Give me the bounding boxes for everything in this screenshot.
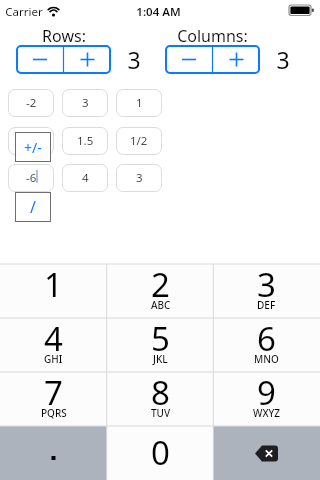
button[interactable]: 4 bbox=[62, 164, 108, 192]
button[interactable] bbox=[16, 45, 64, 74]
staticText: 1.5 bbox=[77, 133, 94, 149]
staticText: PQRS bbox=[41, 406, 67, 420]
button[interactable]: 7 bbox=[0, 372, 107, 426]
staticText: 8 bbox=[151, 370, 170, 415]
button[interactable]: 3 bbox=[213, 264, 320, 318]
button[interactable]: 3 bbox=[62, 89, 108, 117]
button[interactable]: 4 bbox=[0, 318, 107, 372]
staticText: / bbox=[30, 196, 36, 218]
staticText: DEF bbox=[257, 298, 276, 312]
staticText: 3 bbox=[276, 44, 290, 70]
staticText: 6 bbox=[257, 316, 276, 361]
button[interactable]: 0 bbox=[107, 426, 214, 480]
button[interactable]: 1 bbox=[116, 89, 162, 117]
button[interactable] bbox=[213, 426, 320, 480]
staticText: 3 bbox=[127, 44, 141, 70]
button[interactable] bbox=[165, 45, 213, 74]
staticText: Carrier bbox=[5, 4, 43, 18]
staticText: 1 bbox=[44, 262, 63, 307]
staticText: 0 bbox=[151, 430, 170, 475]
staticText: WXYZ bbox=[253, 406, 281, 420]
staticText: 1/2 bbox=[130, 133, 148, 149]
button[interactable] bbox=[213, 426, 320, 480]
staticText: 7 bbox=[44, 370, 63, 415]
button[interactable]: +/- bbox=[15, 132, 51, 162]
button[interactable] bbox=[213, 45, 260, 74]
staticText: MNO bbox=[254, 352, 279, 366]
staticText: 1:04 AM bbox=[136, 4, 181, 18]
staticText: 3 bbox=[136, 170, 143, 186]
button[interactable]: 9 bbox=[213, 372, 320, 426]
button[interactable]: 3 bbox=[116, 164, 162, 192]
button[interactable]: 1 bbox=[0, 264, 107, 318]
staticText: -2 bbox=[26, 95, 37, 111]
staticText: 1 bbox=[136, 95, 143, 111]
button[interactable]: 6 bbox=[213, 318, 320, 372]
staticText: 3 bbox=[257, 262, 276, 307]
staticText: Rows: bbox=[42, 25, 86, 42]
button[interactable]: 5 bbox=[107, 318, 214, 372]
button[interactable] bbox=[0, 426, 107, 480]
button[interactable]: -6 bbox=[8, 164, 54, 192]
staticText: GHI bbox=[44, 352, 63, 366]
staticText: -6 bbox=[26, 170, 37, 186]
staticText: TUV bbox=[151, 406, 171, 420]
button[interactable] bbox=[8, 127, 54, 155]
button[interactable]: 1/2 bbox=[116, 127, 162, 155]
button[interactable] bbox=[64, 45, 111, 74]
staticText: ABC bbox=[151, 298, 171, 312]
staticText: JKL bbox=[153, 352, 168, 366]
staticText: Columns: bbox=[177, 25, 248, 42]
button[interactable]: 1.5 bbox=[62, 127, 108, 155]
button[interactable]: / bbox=[15, 192, 51, 222]
staticText: 3 bbox=[82, 95, 89, 111]
staticText: 4 bbox=[44, 316, 63, 361]
button[interactable]: 8 bbox=[107, 372, 214, 426]
staticText: 9 bbox=[257, 370, 276, 415]
button[interactable] bbox=[0, 426, 107, 480]
staticText: +/- bbox=[24, 138, 42, 157]
staticText: 2 bbox=[151, 262, 170, 307]
button[interactable]: -2 bbox=[8, 89, 54, 117]
staticText: 4 bbox=[82, 170, 89, 186]
button[interactable]: 2 bbox=[107, 264, 214, 318]
staticText: 5 bbox=[151, 316, 170, 361]
